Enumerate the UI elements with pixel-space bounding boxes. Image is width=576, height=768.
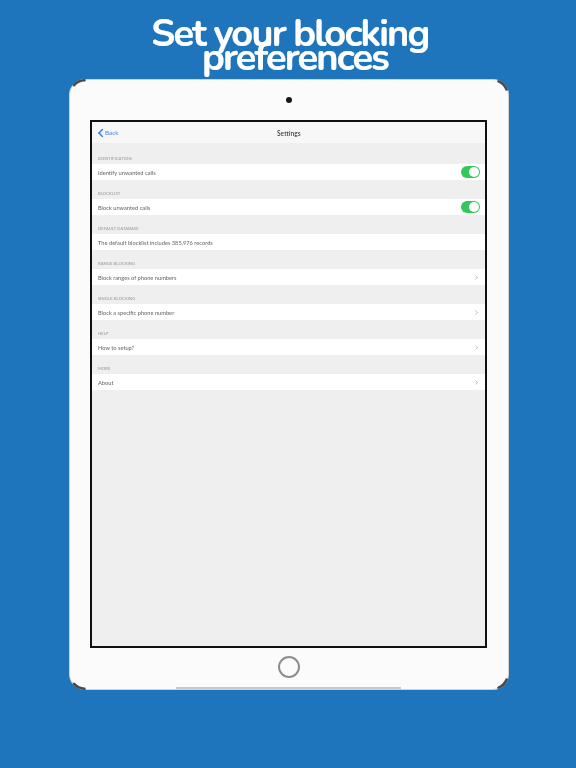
- button[interactable]: Block unwanted calls: [92, 199, 485, 215]
- staticText: Back: [105, 129, 119, 137]
- staticText: Block unwanted calls: [98, 204, 151, 211]
- button[interactable]: Block ranges of phone numbers: [92, 269, 485, 285]
- staticText: IDENTIFICATION: [98, 156, 132, 161]
- staticText: Set your blocking: [2, 8, 576, 60]
- staticText: RANGE BLOCKING: [98, 261, 136, 266]
- button[interactable]: Block a specific phone number: [92, 304, 485, 320]
- staticText: Settings: [277, 129, 301, 137]
- staticText: HELP: [98, 331, 109, 336]
- button[interactable]: Toggle setting: [461, 166, 480, 178]
- staticText: preferences: [7, 32, 576, 84]
- button[interactable]: Toggle setting: [461, 201, 480, 213]
- staticText: About: [98, 379, 114, 386]
- button[interactable]: The default blocklist includes 385,976 r…: [92, 234, 485, 250]
- button[interactable]: How to setup?: [92, 339, 485, 355]
- staticText: Block a specific phone number: [98, 309, 175, 316]
- staticText: MORE: [98, 366, 111, 371]
- staticText: How to setup?: [98, 344, 135, 351]
- staticText: Block ranges of phone numbers: [98, 274, 177, 281]
- button[interactable]: About: [92, 374, 485, 390]
- staticText: The default blocklist includes 385,976 r…: [98, 239, 213, 246]
- button[interactable]: Back: [92, 125, 123, 141]
- staticText: Identify unwanted calls: [98, 169, 156, 176]
- staticText: BLOCKLIST: [98, 191, 121, 196]
- staticText: DEFAULT DATABASE: [98, 226, 139, 231]
- button[interactable]: Identify unwanted calls: [92, 164, 485, 180]
- staticText: SINGLE BLOCKING: [98, 296, 136, 301]
